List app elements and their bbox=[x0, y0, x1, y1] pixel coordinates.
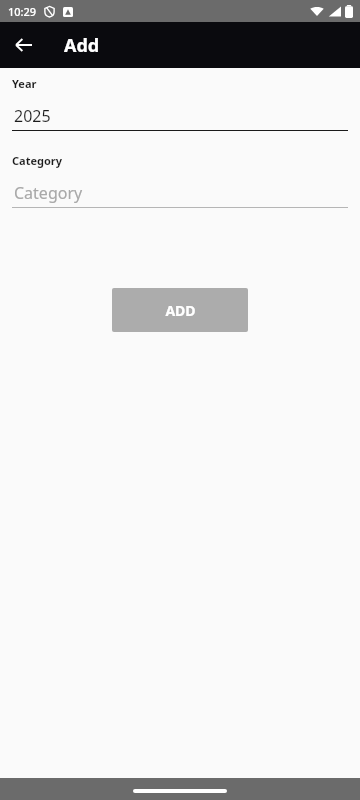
staticText: 2025 bbox=[14, 105, 51, 127]
button[interactable]: 2025 bbox=[12, 105, 348, 131]
button[interactable]: Back bbox=[8, 29, 40, 61]
staticText: Category bbox=[14, 182, 83, 204]
button[interactable]: Category bbox=[12, 182, 348, 208]
staticText: Category bbox=[12, 153, 63, 168]
button[interactable]: ADD bbox=[112, 288, 248, 332]
staticText: ADD bbox=[165, 301, 196, 320]
staticText: 10:29 bbox=[8, 4, 37, 19]
staticText: Year bbox=[12, 76, 37, 91]
staticText: Add bbox=[64, 33, 100, 58]
